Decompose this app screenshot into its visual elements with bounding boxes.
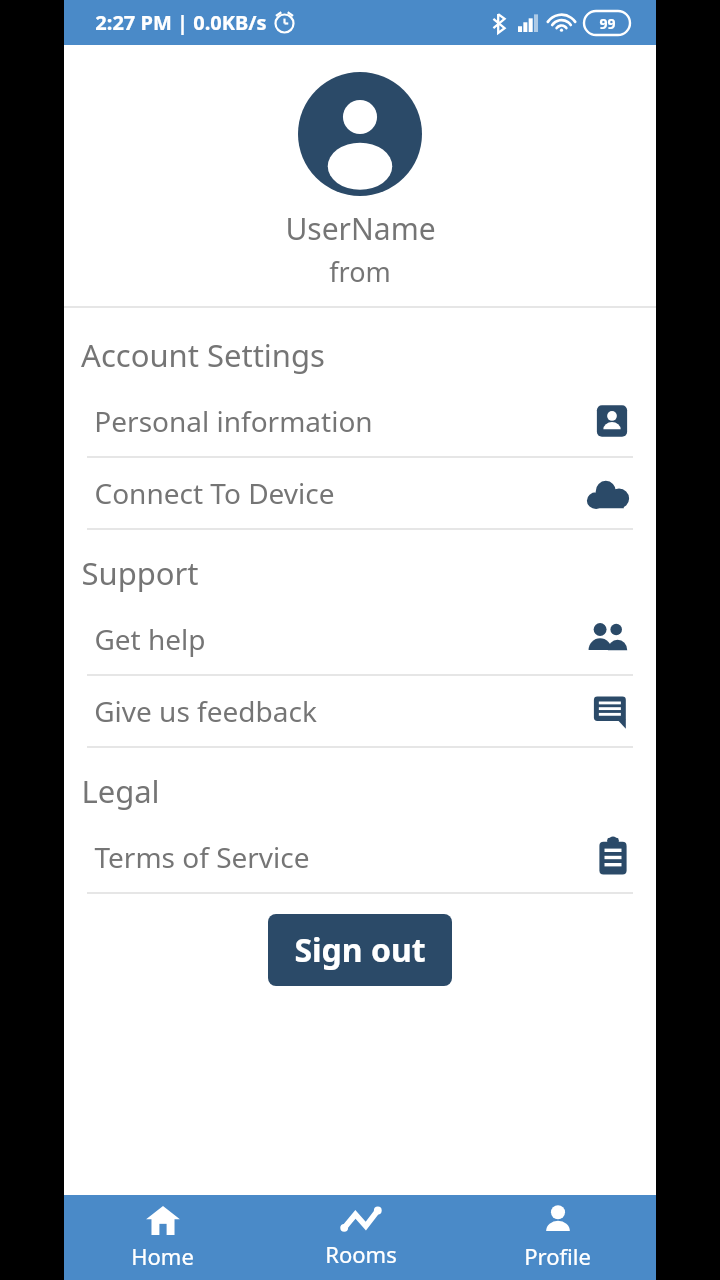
button[interactable]: Connect To Device [64,458,656,528]
staticText: from [329,253,391,290]
staticText: Support [81,552,199,594]
other: Connect To Device [586,477,630,509]
staticText: Personal information [94,402,373,440]
staticText: Rooms [325,1239,397,1269]
staticText: Home [131,1241,194,1271]
button[interactable]: Sign out [268,914,452,986]
staticText: Give us feedback [94,692,317,730]
button[interactable]: Personal information [64,386,656,456]
staticText: Sign out [294,928,426,972]
staticText: Connect To Device [94,474,335,512]
button[interactable]: Profile [459,1195,656,1280]
other: Terms of Service [596,837,630,877]
button[interactable]: Home [64,1195,261,1280]
button[interactable]: Rooms [262,1195,459,1280]
button[interactable]: Terms of Service [64,822,656,892]
staticText: 2:27 PM | 0.0KB/s [95,9,267,36]
staticText: 99 [599,14,616,33]
other: Give us feedback [592,692,630,730]
button[interactable]: Get help [64,604,656,674]
staticText: UserName [285,208,436,249]
staticText: Legal [81,770,160,812]
button[interactable]: Give us feedback [64,676,656,746]
other: Get help [584,622,630,656]
staticText: Profile [524,1241,591,1271]
staticText: Account Settings [81,334,325,376]
staticText: Terms of Service [94,838,310,876]
other: Personal information [594,403,630,439]
staticText: Get help [94,620,206,658]
